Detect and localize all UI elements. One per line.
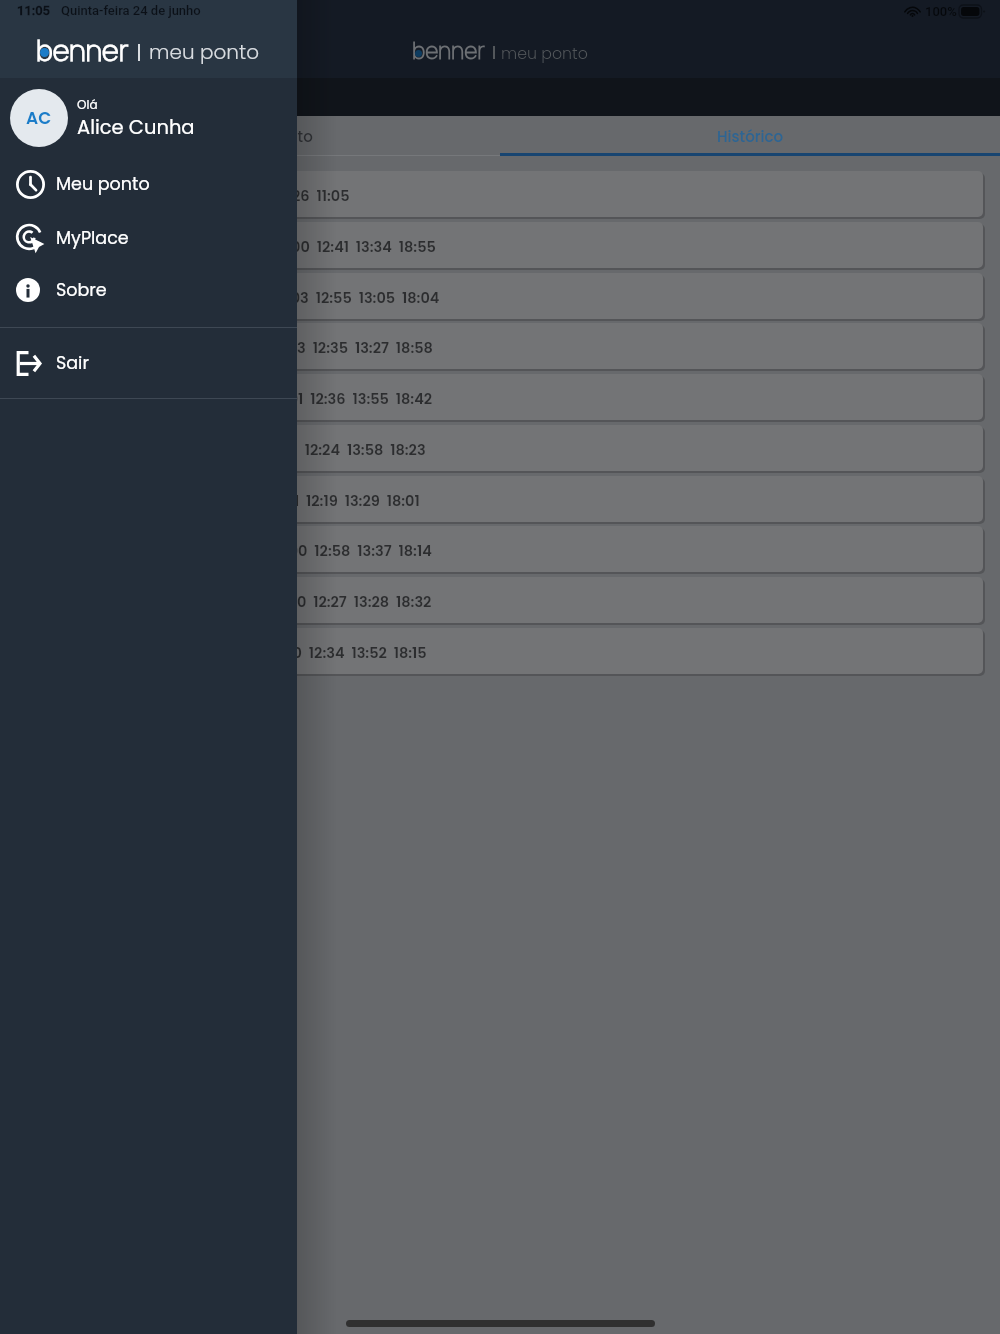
- staticText: 11/06 07:50 12:34 13:52 18:15: [219, 643, 427, 663]
- button[interactable]: 23/06 08:00 12:41 13:34 18:55: [0, 222, 983, 268]
- staticText: 14/06 07:50 12:27 13:28 18:32: [219, 592, 432, 612]
- button[interactable]: 15/06 08:00 12:58 13:37 18:14: [0, 526, 983, 572]
- staticText: Sair: [56, 351, 89, 376]
- button[interactable]: 21/06 08:03 12:35 13:27 18:58: [0, 323, 983, 369]
- staticText: 18/06 08:01 12:36 13:55 18:42: [219, 389, 433, 409]
- button[interactable]: 16/06 08:11 12:19 13:29 18:01: [0, 476, 983, 522]
- staticText: meu ponto: [501, 42, 588, 64]
- button[interactable]: 24/06 08:26 11:05: [0, 171, 983, 217]
- button[interactable]: 11/06 07:50 12:34 13:52 18:15: [0, 628, 983, 674]
- staticText: meu ponto: [149, 38, 259, 66]
- staticText: Olá: [77, 96, 98, 113]
- staticText: Histórico: [717, 126, 783, 147]
- button[interactable]: AC: [0, 89, 297, 147]
- staticText: Quinta-feira 24 de junho: [61, 3, 201, 18]
- staticText: 23/06 08:00 12:41 13:34 18:55: [219, 237, 436, 257]
- button[interactable]: 18/06 08:01 12:36 13:55 18:42: [0, 374, 983, 420]
- staticText: MyPlace: [56, 226, 129, 251]
- staticText: Meu ponto: [232, 126, 313, 147]
- staticText: benner: [412, 35, 486, 66]
- button[interactable]: Meu ponto: [0, 116, 500, 156]
- staticText: 16/06 08:11 12:19 13:29 18:01: [219, 491, 420, 511]
- staticText: Meu ponto: [56, 172, 150, 197]
- button[interactable]: Sair: [0, 337, 297, 389]
- staticText: 21/06 08:03 12:35 13:27 18:58: [219, 338, 433, 358]
- staticText: 17/06 08:11 12:24 13:58 18:23: [219, 440, 426, 460]
- button[interactable]: 17/06 08:11 12:24 13:58 18:23: [0, 425, 983, 471]
- button[interactable]: Sobre: [0, 264, 297, 316]
- button[interactable]: 14/06 07:50 12:27 13:28 18:32: [0, 577, 983, 623]
- staticText: 15/06 08:00 12:58 13:37 18:14: [219, 541, 432, 561]
- button[interactable]: MyPlace: [0, 212, 297, 264]
- staticText: Alice Cunha: [77, 114, 195, 141]
- staticText: 22/06 08:03 12:55 13:05 18:04: [219, 288, 440, 308]
- staticText: 11:05: [17, 3, 51, 18]
- staticText: Sobre: [56, 278, 107, 303]
- staticText: benner: [36, 30, 129, 70]
- staticText: 100%: [925, 4, 957, 19]
- staticText: 24/06 08:26 11:05: [219, 186, 350, 206]
- button[interactable]: Histórico: [500, 116, 1000, 156]
- staticText: AC: [26, 106, 52, 130]
- button[interactable]: 22/06 08:03 12:55 13:05 18:04: [0, 273, 983, 319]
- button[interactable]: Meu ponto: [0, 158, 297, 210]
